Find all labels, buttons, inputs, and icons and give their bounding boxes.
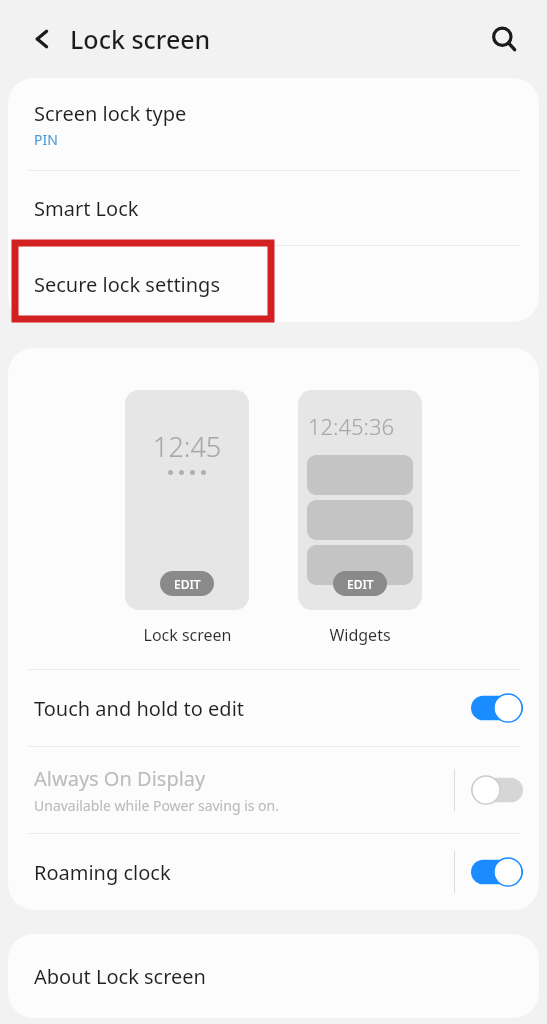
staticText: Screen lock type: [34, 100, 187, 127]
button[interactable]: Back: [22, 17, 66, 61]
button[interactable]: Secure lock settings: [8, 246, 539, 322]
button[interactable]: Off: [471, 775, 523, 805]
button[interactable]: Screen lock type: [8, 78, 539, 170]
staticText: Unavailable while Power saving is on.: [34, 796, 279, 815]
button[interactable]: EDIT: [160, 571, 214, 596]
button[interactable]: EDIT: [333, 571, 387, 596]
staticText: PIN: [34, 130, 58, 149]
button[interactable]: Touch and hold to edit: [8, 670, 539, 746]
button[interactable]: Always On Display: [8, 747, 539, 833]
staticText: About Lock screen: [34, 963, 206, 990]
button[interactable]: Roaming clock: [8, 834, 539, 910]
button[interactable]: On: [471, 693, 523, 723]
button[interactable]: Widgets: [298, 390, 422, 610]
staticText: EDIT: [347, 576, 374, 592]
staticText: 12:45:36: [308, 411, 422, 441]
staticText: Touch and hold to edit: [34, 695, 245, 722]
staticText: 12:45: [153, 428, 222, 465]
button[interactable]: About Lock screen: [8, 934, 539, 1018]
button[interactable]: Lock screen: [125, 390, 249, 610]
staticText: Always On Display: [34, 765, 206, 792]
staticText: Smart Lock: [34, 195, 139, 222]
staticText: Secure lock settings: [34, 271, 220, 298]
staticText: Widgets: [329, 624, 391, 646]
button[interactable]: Smart Lock: [8, 171, 539, 245]
button[interactable]: On: [471, 857, 523, 887]
staticText: EDIT: [174, 576, 201, 592]
staticText: Lock screen: [70, 22, 211, 56]
button[interactable]: Search: [481, 16, 527, 62]
staticText: Lock screen: [143, 624, 232, 646]
staticText: Roaming clock: [34, 859, 171, 886]
